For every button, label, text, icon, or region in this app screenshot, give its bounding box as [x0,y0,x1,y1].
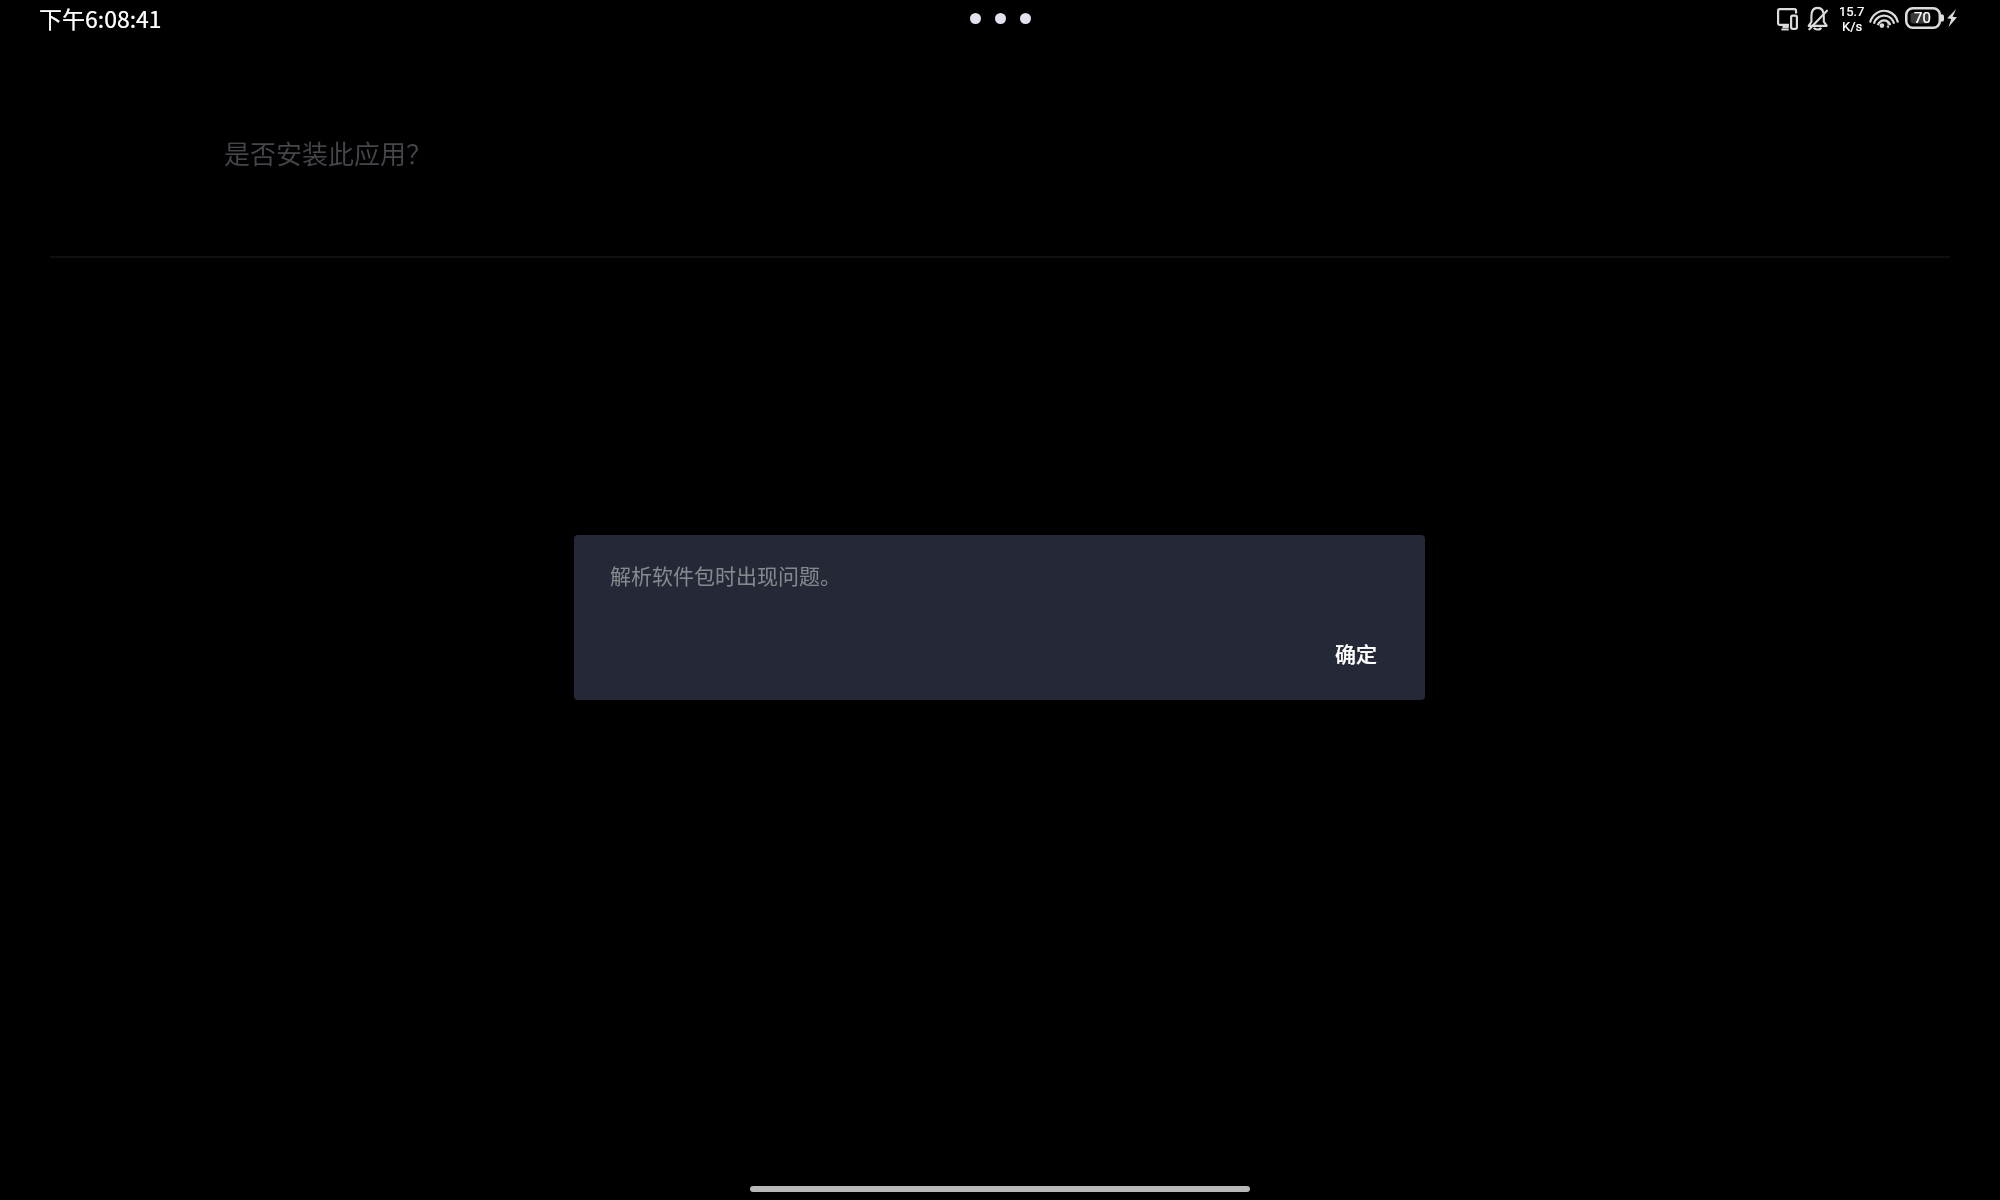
other: Connected devices [1777,8,1798,30]
other: Charging [1947,9,1957,27]
other: Silent mode [1807,7,1828,30]
staticText: K/s [1842,19,1863,34]
staticText: 确定 [1335,638,1377,668]
other: Wi-Fi [1870,3,1898,29]
staticText: 是否安装此应用？ [224,134,433,172]
button[interactable]: 确定 [1307,624,1405,682]
other: Battery 70 percent [1905,7,1944,29]
staticText: 解析软件包时出现问题。 [610,560,841,590]
staticText: 15.7 [1839,4,1865,19]
staticText: 70 [1914,9,1931,27]
button[interactable]: Home [750,1186,1250,1192]
staticText: 下午6:08:41 [39,1,162,34]
